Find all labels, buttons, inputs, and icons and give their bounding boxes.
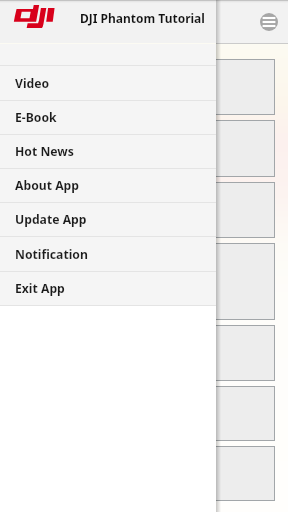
button[interactable] [8,59,275,115]
staticText: Update App [15,211,87,228]
staticText: Video [15,75,50,92]
button[interactable]: Hot News [0,135,216,168]
button[interactable] [8,182,275,238]
button[interactable] [8,325,275,381]
button[interactable] [8,446,275,501]
button[interactable]: Video [0,66,216,100]
staticText: E-Book [15,109,57,126]
button[interactable] [8,386,275,441]
staticText: About App [15,177,79,194]
button[interactable]: Notification [0,237,216,271]
staticText: Hot News [15,143,74,160]
staticText: DJI Phantom Tutorial [80,10,205,26]
button[interactable]: Open navigation menu [252,5,286,39]
button[interactable]: About App [0,169,216,202]
button[interactable] [8,120,275,177]
button[interactable]: Update App [0,203,216,236]
staticText: Exit App [15,280,65,297]
button[interactable]: Exit App [0,272,216,305]
staticText: Notification [15,246,88,263]
button[interactable]: E-Book [0,101,216,134]
button[interactable] [8,243,275,320]
